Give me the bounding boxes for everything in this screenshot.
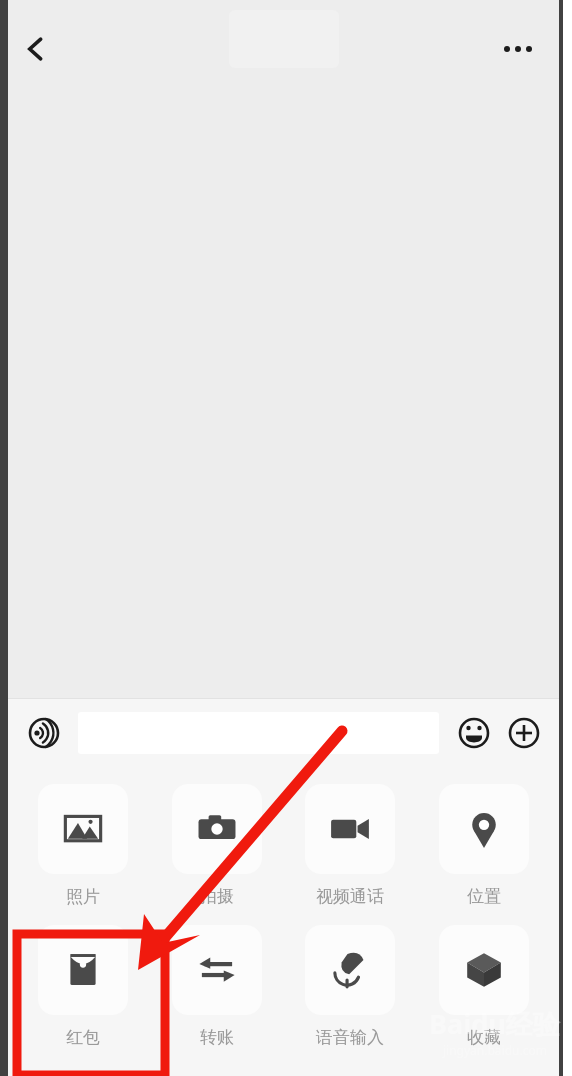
button[interactable]: 收藏 bbox=[425, 923, 543, 1050]
staticText: 红包 bbox=[66, 1027, 100, 1048]
button[interactable]: 红包 bbox=[24, 923, 142, 1050]
button[interactable]: Back bbox=[8, 21, 64, 77]
staticText: jingyan.baidu.com bbox=[443, 1042, 547, 1058]
button[interactable]: 位置 bbox=[425, 782, 543, 909]
button[interactable]: More options bbox=[491, 25, 545, 73]
staticText: 收藏 bbox=[467, 1027, 501, 1048]
staticText: 转账 bbox=[200, 1027, 234, 1048]
button[interactable]: 照片 bbox=[24, 782, 142, 909]
staticText: 位置 bbox=[467, 886, 501, 907]
staticText: 语音输入 bbox=[316, 1027, 384, 1048]
button[interactable]: 转账 bbox=[158, 923, 276, 1050]
button[interactable]: 视频通话 bbox=[291, 782, 409, 909]
button[interactable]: More functions bbox=[501, 710, 547, 756]
button[interactable]: 语音输入 bbox=[291, 923, 409, 1050]
staticText: 拍摄 bbox=[200, 886, 234, 907]
button[interactable]: Emoji bbox=[451, 710, 497, 756]
staticText: 照片 bbox=[66, 886, 100, 907]
staticText: 视频通话 bbox=[316, 886, 384, 907]
staticText: Baidu经验 bbox=[429, 1005, 560, 1042]
button[interactable]: Voice message bbox=[20, 709, 68, 757]
button[interactable]: 拍摄 bbox=[158, 782, 276, 909]
button[interactable] bbox=[78, 712, 439, 754]
